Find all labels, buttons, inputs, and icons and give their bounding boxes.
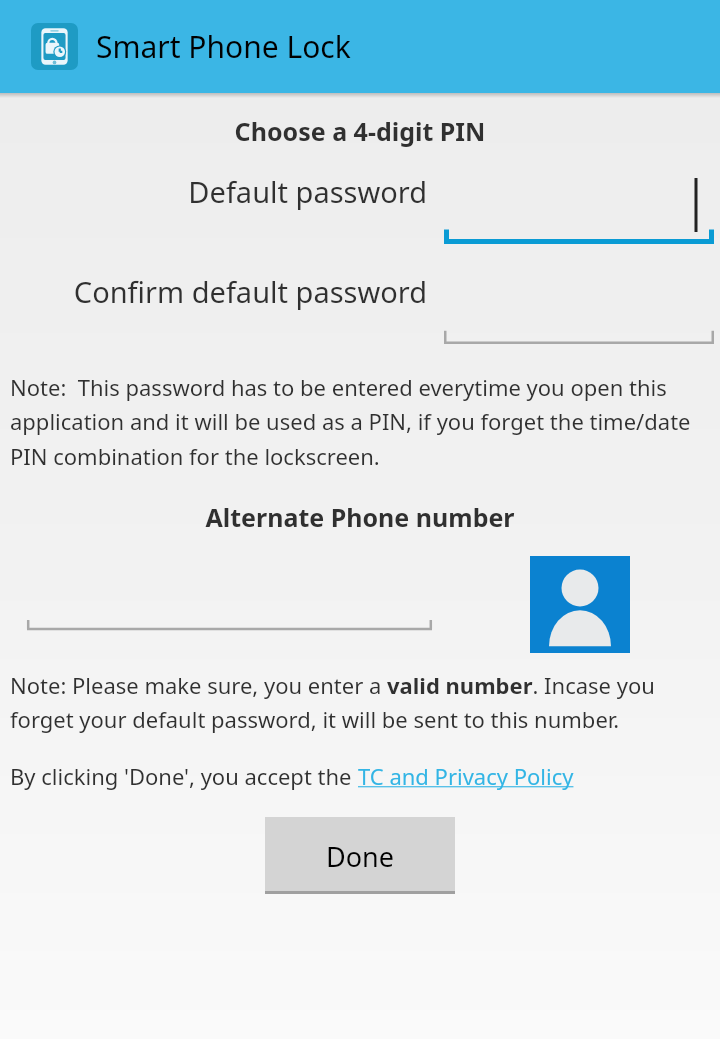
staticText: TC and Privacy Policy xyxy=(358,761,574,791)
staticText: By clicking 'Done', you accept the xyxy=(10,761,358,791)
button[interactable]: Done xyxy=(265,817,455,895)
staticText: Done xyxy=(326,838,394,875)
staticText: Note: Please make sure, you enter a vali… xyxy=(10,670,712,735)
staticText: Default password xyxy=(10,172,427,211)
button[interactable]: TC and Privacy Policy xyxy=(358,761,574,791)
staticText: Choose a 4-digit PIN xyxy=(0,114,720,148)
button[interactable] xyxy=(444,172,714,244)
button[interactable] xyxy=(444,272,714,344)
staticText: Confirm default password xyxy=(10,272,427,311)
other: Smart Phone Lock icon xyxy=(31,23,78,70)
staticText: Note: This password has to be entered ev… xyxy=(10,372,712,472)
button[interactable]: Pick contact xyxy=(530,556,630,653)
staticText: Alternate Phone number xyxy=(0,500,720,534)
button[interactable] xyxy=(27,574,432,634)
staticText: Smart Phone Lock xyxy=(96,26,351,67)
